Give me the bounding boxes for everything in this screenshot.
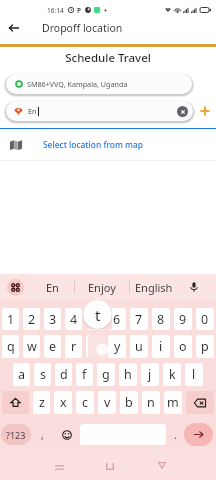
- staticText: En: [46, 280, 59, 295]
- staticText: 3: [49, 311, 57, 328]
- staticText: o: [179, 338, 187, 355]
- staticText: s: [40, 366, 46, 383]
- button[interactable]: b: [120, 391, 138, 414]
- staticText: e: [49, 338, 57, 355]
- button[interactable]: g: [97, 363, 115, 386]
- button[interactable]: En: [6, 101, 193, 121]
- button[interactable]: Back: [0, 16, 28, 40]
- button[interactable]: Add stop: [197, 103, 213, 119]
- staticText: .: [174, 428, 177, 442]
- button[interactable]: u: [130, 335, 148, 358]
- button[interactable]: 7: [130, 308, 148, 330]
- staticText: g: [102, 366, 110, 383]
- staticText: k: [169, 366, 176, 383]
- staticText: f: [82, 366, 87, 383]
- button[interactable]: SM86+VVQ, Kampala, Uganda: [6, 74, 192, 94]
- button[interactable]: f: [76, 363, 93, 386]
- staticText: 4: [70, 311, 78, 328]
- button[interactable]: English: [130, 274, 178, 300]
- button[interactable]: Keyboard menu: [7, 279, 24, 296]
- button[interactable]: .: [166, 424, 184, 445]
- staticText: q: [7, 338, 15, 355]
- staticText: 9: [179, 311, 187, 328]
- button[interactable]: k: [163, 363, 181, 386]
- staticText: u: [135, 338, 143, 355]
- staticText: l: [192, 366, 196, 383]
- staticText: 7: [135, 311, 143, 328]
- staticText: t: [95, 305, 101, 325]
- staticText: Select location from map: [43, 139, 143, 150]
- button[interactable]: r: [65, 335, 82, 358]
- button[interactable]: n: [142, 391, 160, 414]
- button[interactable]: Backspace: [186, 391, 214, 414]
- button[interactable]: 0: [196, 308, 214, 330]
- staticText: d: [60, 366, 68, 383]
- button[interactable]: d: [55, 363, 72, 386]
- staticText: Dropoff location: [42, 21, 123, 35]
- button[interactable]: 4: [65, 308, 82, 330]
- button[interactable]: i: [152, 335, 170, 358]
- button[interactable]: z: [33, 391, 50, 414]
- staticText: SM86+VVQ, Kampala, Uganda: [27, 79, 128, 89]
- button[interactable]: ,: [31, 424, 53, 445]
- staticText: 8: [157, 311, 165, 328]
- staticText: i: [159, 338, 163, 355]
- button[interactable]: 3: [44, 308, 61, 330]
- staticText: x: [60, 394, 67, 411]
- staticText: En: [28, 106, 37, 116]
- staticText: z: [39, 394, 45, 411]
- button[interactable]: Emoji: [53, 424, 80, 445]
- button[interactable]: Back: [147, 449, 177, 480]
- staticText: w: [27, 338, 37, 355]
- button[interactable]: y: [108, 335, 126, 358]
- button[interactable]: 5: [86, 308, 104, 330]
- button[interactable]: w: [23, 335, 40, 358]
- staticText: Schedule Travel: [0, 50, 216, 66]
- button[interactable]: j: [141, 363, 159, 386]
- button[interactable]: o: [174, 335, 192, 358]
- staticText: n: [147, 394, 155, 411]
- button[interactable]: Home: [95, 449, 125, 480]
- staticText: Enjoy: [88, 280, 116, 295]
- staticText: 5: [91, 311, 99, 328]
- button[interactable]: 6: [108, 308, 126, 330]
- staticText: P: [77, 6, 82, 15]
- button[interactable]: Select location from map: [0, 129, 216, 160]
- button[interactable]: Enter: [184, 423, 213, 446]
- button[interactable]: v: [98, 391, 116, 414]
- button[interactable]: h: [119, 363, 137, 386]
- button[interactable]: e: [44, 335, 61, 358]
- button[interactable]: m: [164, 391, 182, 414]
- staticText: 0: [201, 311, 209, 328]
- button[interactable]: x: [54, 391, 72, 414]
- button[interactable]: 8: [152, 308, 170, 330]
- button[interactable]: En: [30, 274, 74, 300]
- button[interactable]: q: [2, 335, 19, 358]
- staticText: 16:14: [47, 6, 64, 15]
- staticText: English: [135, 280, 173, 295]
- button[interactable]: 9: [174, 308, 192, 330]
- staticText: r: [71, 338, 77, 355]
- button[interactable]: Voice input: [185, 278, 203, 296]
- button[interactable]: a: [13, 363, 30, 386]
- staticText: t: [93, 338, 98, 355]
- button[interactable]: 2: [23, 308, 40, 330]
- staticText: h: [124, 366, 132, 383]
- staticText: v: [104, 394, 111, 411]
- button[interactable]: s: [34, 363, 51, 386]
- button[interactable]: Recent apps: [44, 449, 74, 480]
- button[interactable]: Clear text: [177, 106, 188, 117]
- staticText: y: [114, 338, 121, 355]
- button[interactable]: ?123: [1, 424, 31, 445]
- button[interactable]: t: [86, 335, 104, 358]
- button[interactable]: l: [185, 363, 203, 386]
- button[interactable]: 1: [2, 308, 19, 330]
- staticText: c: [82, 394, 89, 411]
- staticText: a: [18, 366, 26, 383]
- button[interactable]: Shift: [2, 391, 29, 414]
- button[interactable]: Enjoy: [75, 274, 129, 300]
- staticText: ?123: [6, 429, 26, 441]
- button[interactable]: c: [76, 391, 94, 414]
- button[interactable]: p: [196, 335, 214, 358]
